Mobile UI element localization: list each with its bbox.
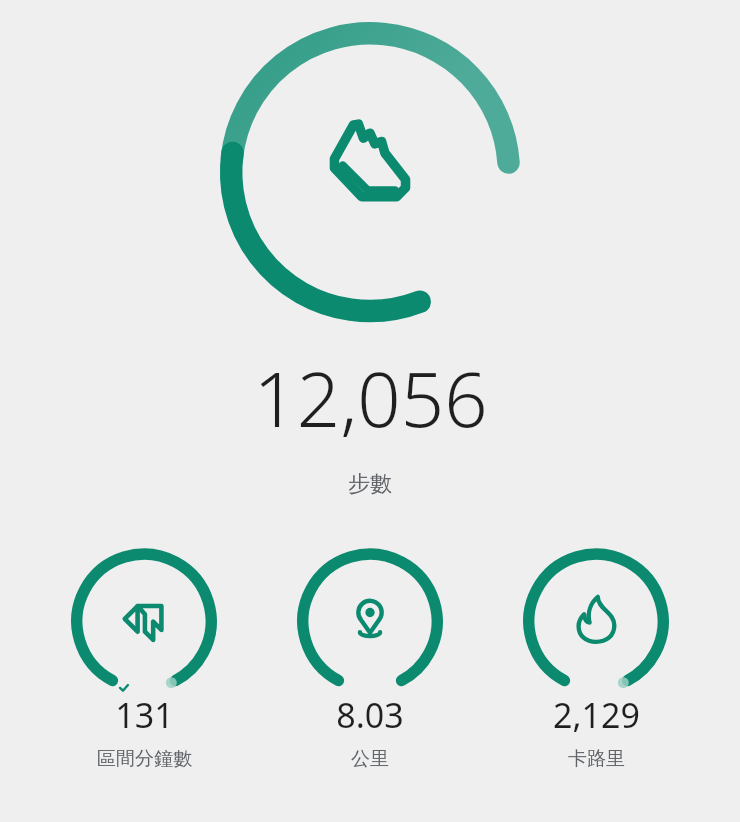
- button[interactable]: Distance, 8.03 公里: [288, 532, 452, 771]
- staticText: 2,129: [553, 692, 640, 738]
- staticText: 公里: [351, 747, 389, 771]
- staticText: 卡路里: [568, 747, 625, 771]
- staticText: 131: [115, 692, 174, 738]
- staticText: 步數: [348, 470, 392, 498]
- staticText: 12,056: [253, 346, 488, 450]
- staticText: 區間分鐘數: [97, 747, 192, 771]
- button[interactable]: Steps progress ring: [200, 24, 540, 336]
- staticText: 8.03: [336, 692, 404, 738]
- button[interactable]: Calories, 2,129 卡路里: [514, 532, 678, 771]
- button[interactable]: Heart points, 131 區間分鐘數: [62, 532, 226, 771]
